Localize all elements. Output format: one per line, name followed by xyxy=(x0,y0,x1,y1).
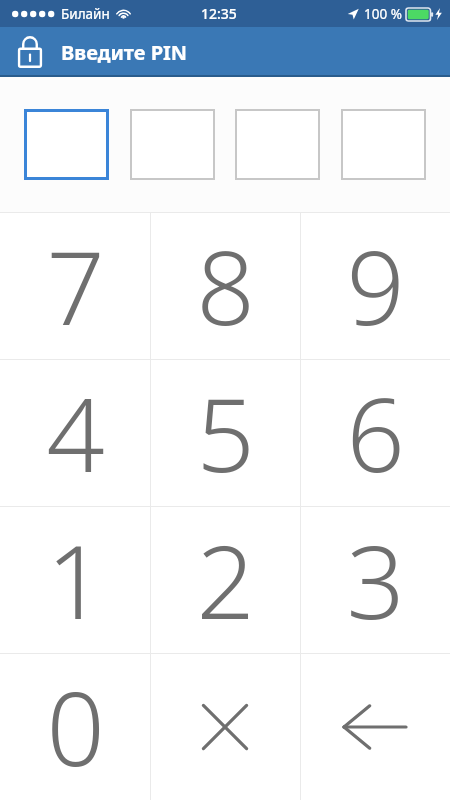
button[interactable]: 8 xyxy=(150,212,300,359)
staticText: 0 xyxy=(46,657,105,796)
button[interactable]: Close xyxy=(150,653,300,800)
button[interactable]: 5 xyxy=(150,359,300,506)
button[interactable]: PIN digit 2 xyxy=(130,109,215,180)
button[interactable]: 6 xyxy=(300,359,450,506)
staticText: 3 xyxy=(346,510,405,649)
button[interactable]: 9 xyxy=(300,212,450,359)
button[interactable]: 0 xyxy=(0,653,150,800)
button[interactable]: 3 xyxy=(300,506,450,653)
button[interactable]: PIN digit 1 xyxy=(24,109,109,180)
button[interactable]: Lock xyxy=(13,33,47,71)
staticText: 100 % xyxy=(364,5,402,23)
button[interactable]: 4 xyxy=(0,359,150,506)
staticText: 1 xyxy=(46,510,105,649)
staticText: 6 xyxy=(346,363,405,502)
button[interactable]: 2 xyxy=(150,506,300,653)
button[interactable]: Backspace xyxy=(300,653,450,800)
button[interactable]: 7 xyxy=(0,212,150,359)
button[interactable]: PIN digit 4 xyxy=(341,109,426,180)
staticText: Билайн xyxy=(61,5,110,23)
staticText: 8 xyxy=(196,216,255,355)
button[interactable]: 1 xyxy=(0,506,150,653)
staticText: 7 xyxy=(46,216,105,355)
staticText: 12:35 xyxy=(201,4,237,23)
button[interactable]: PIN digit 3 xyxy=(235,109,320,180)
staticText: 2 xyxy=(196,510,255,649)
staticText: 4 xyxy=(46,363,105,502)
staticText: 9 xyxy=(346,216,405,355)
staticText: Введите PIN xyxy=(61,39,188,66)
staticText: 5 xyxy=(196,363,255,502)
